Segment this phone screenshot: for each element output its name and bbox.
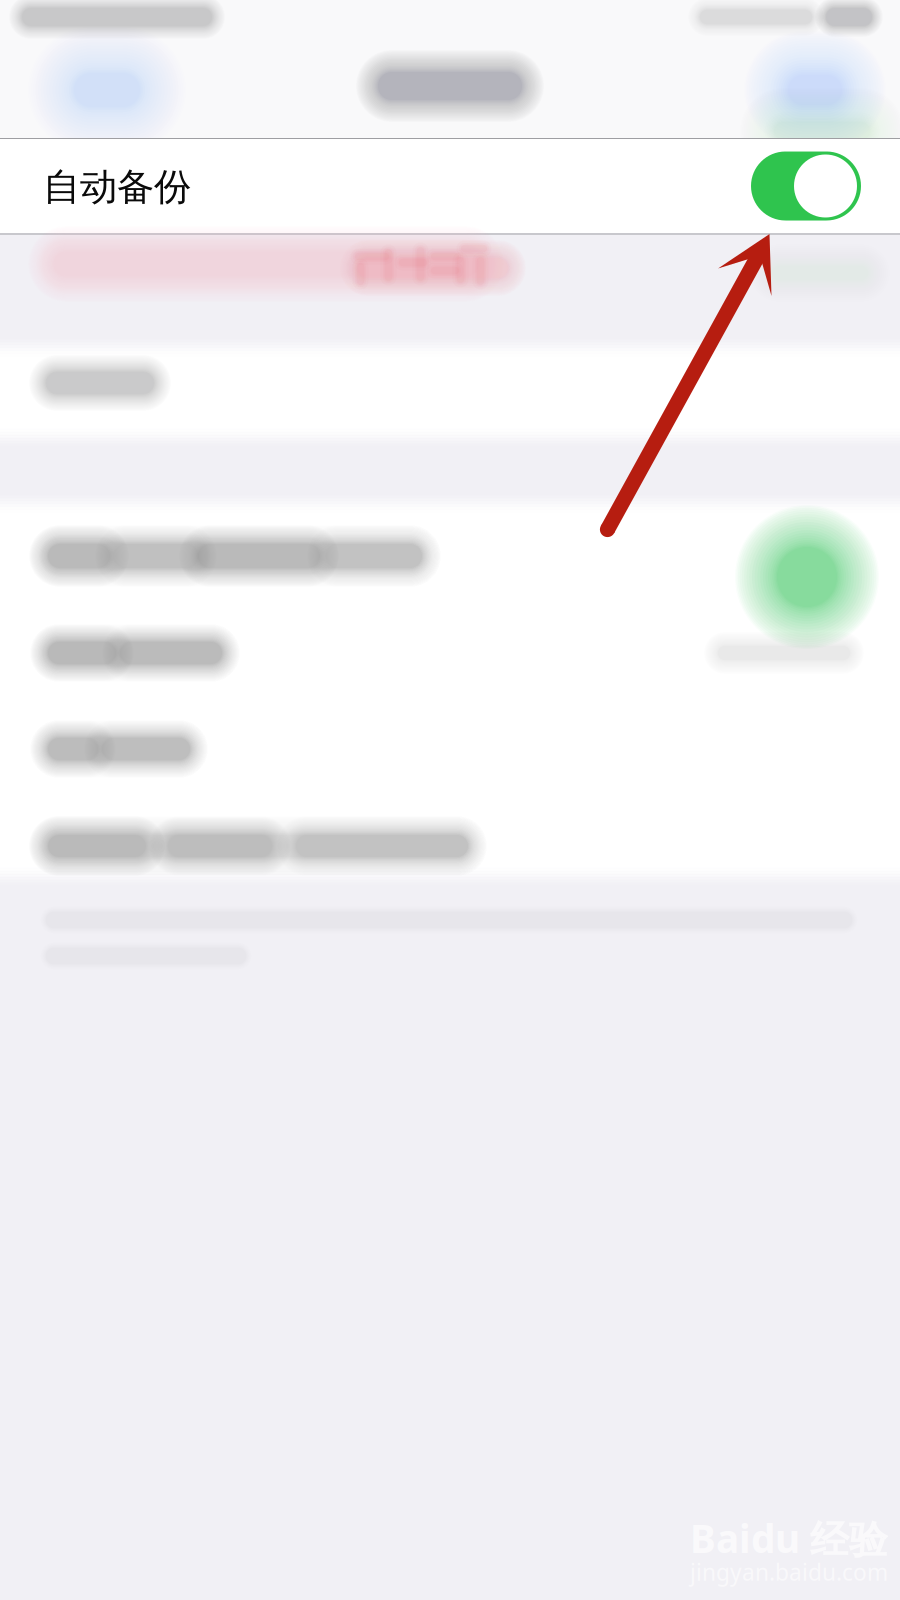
staticText: 自动备份 [43, 164, 191, 210]
staticText: Baidu 经验 [690, 1512, 888, 1564]
button[interactable]: Back [17, 44, 197, 136]
button[interactable]: 自动备份 [0, 139, 900, 233]
button[interactable]: Done [730, 44, 900, 136]
